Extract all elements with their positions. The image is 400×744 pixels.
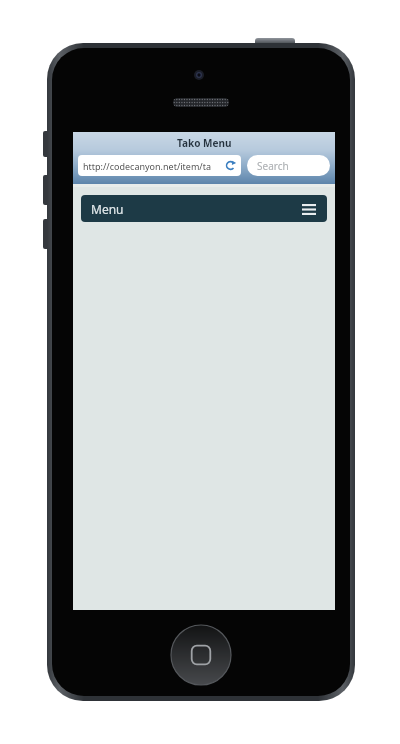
other: Reload (225, 160, 236, 171)
button[interactable]: Open menu (301, 201, 317, 217)
staticText: Search (257, 159, 289, 173)
button[interactable]: Home (171, 625, 231, 685)
button[interactable]: Menu (81, 195, 327, 222)
staticText: Tako Menu (177, 136, 232, 150)
button[interactable]: http://codecanyon.net/item/ta (78, 155, 241, 176)
button[interactable]: Search (247, 155, 330, 176)
staticText: http://codecanyon.net/item/ta (83, 160, 211, 172)
staticText: Menu (91, 201, 124, 217)
